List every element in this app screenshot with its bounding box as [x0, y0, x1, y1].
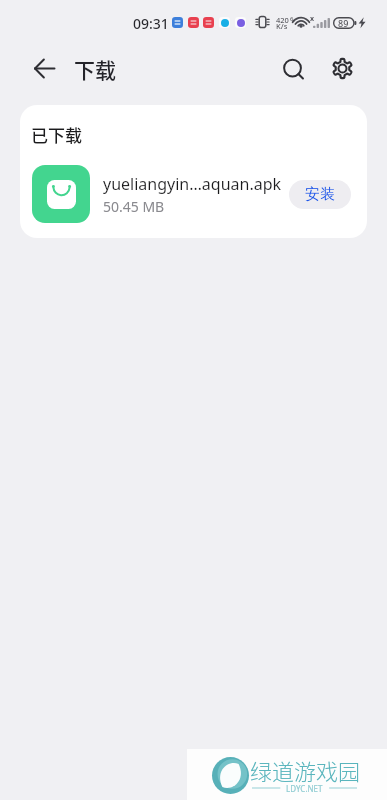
button[interactable]: Search: [269, 45, 316, 92]
staticText: x: [310, 14, 315, 24]
button[interactable]: 安装: [289, 180, 351, 209]
button[interactable]: Settings: [319, 45, 366, 92]
staticText: 已下载: [31, 122, 82, 147]
staticText: LDYC.NET: [286, 783, 323, 793]
staticText: 安装: [305, 185, 335, 204]
staticText: 6: [290, 15, 294, 23]
button[interactable]: Back: [22, 46, 66, 90]
staticText: K/s: [276, 21, 288, 31]
staticText: 09:31: [133, 14, 169, 33]
staticText: 下载: [74, 54, 116, 84]
button[interactable]: yueliangyin…aquan.apk: [20, 163, 367, 225]
staticText: yueliangyin…aquan.apk: [103, 173, 282, 195]
staticText: 50.45 MB: [103, 197, 165, 216]
staticText: 420: [276, 15, 289, 25]
staticText: 绿道游戏园: [250, 754, 361, 786]
staticText: 89: [338, 17, 349, 29]
